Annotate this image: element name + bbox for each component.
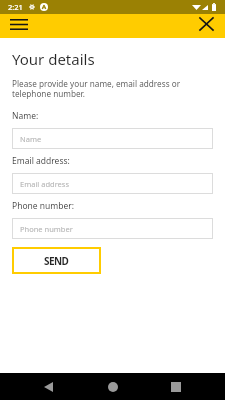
button[interactable]: Recent apps <box>163 373 188 400</box>
button[interactable]: Home <box>100 373 125 400</box>
staticText: Email address <box>20 179 70 189</box>
staticText: Phone number: <box>12 200 75 212</box>
button[interactable]: Email address <box>12 173 213 194</box>
staticText: SEND <box>44 254 69 268</box>
staticText: Name <box>20 134 42 144</box>
button[interactable]: Close <box>194 14 218 38</box>
staticText: 2:21 <box>8 2 23 12</box>
staticText: Name: <box>12 110 39 122</box>
staticText: Email address: <box>12 155 70 167</box>
button[interactable]: Name <box>12 128 213 149</box>
staticText: Your details <box>12 49 95 69</box>
staticText: Phone number <box>20 224 73 234</box>
staticText: Please provide your name, email address … <box>12 78 213 99</box>
button[interactable]: SEND <box>12 247 101 274</box>
button[interactable]: Phone number <box>12 218 213 239</box>
button[interactable]: Open navigation menu <box>3 14 34 38</box>
button[interactable]: Back <box>36 373 61 400</box>
